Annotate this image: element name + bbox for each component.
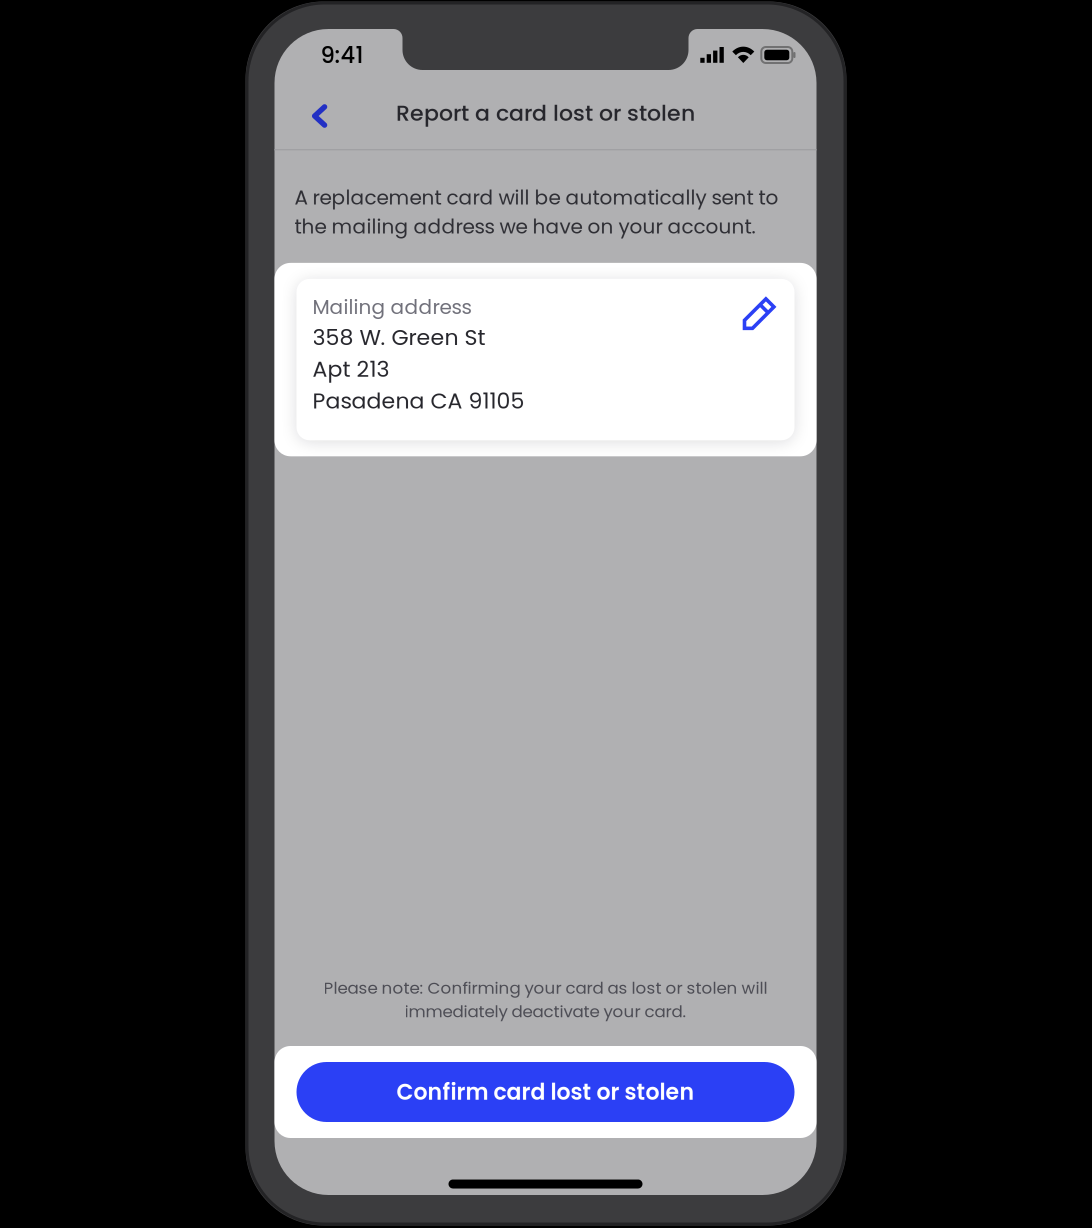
staticText: 9:41 xyxy=(320,39,363,71)
button[interactable]: Edit mailing address xyxy=(742,293,776,331)
staticText: A replacement card will be automatically… xyxy=(294,183,778,211)
staticText: Report a card lost or stolen xyxy=(396,98,695,128)
staticText: the mailing address we have on your acco… xyxy=(294,212,755,240)
staticText: Pasadena CA 91105 xyxy=(312,385,524,416)
staticText: Apt 213 xyxy=(312,354,389,384)
staticText: immediately deactivate your card. xyxy=(404,1000,686,1023)
staticText: Please note: Confirming your card as los… xyxy=(323,976,767,1000)
staticText: Mailing address xyxy=(312,293,471,321)
staticText: 358 W. Green St xyxy=(312,322,485,353)
staticText: Confirm card lost or stolen xyxy=(396,1077,694,1107)
button[interactable]: Confirm card lost or stolen xyxy=(296,1062,794,1122)
button[interactable]: Back xyxy=(274,85,345,141)
